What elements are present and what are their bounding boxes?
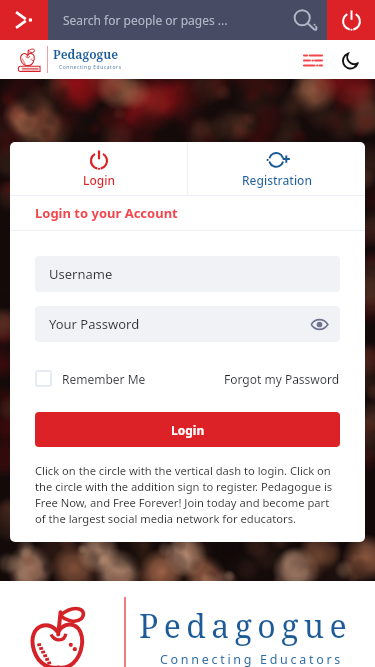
- button[interactable]: Search: [281, 0, 327, 40]
- button[interactable]: Login: [10, 142, 187, 195]
- staticText: Your Password: [49, 315, 140, 333]
- staticText: Username: [49, 265, 113, 283]
- button[interactable]: Menu: [0, 0, 48, 40]
- staticText: Connecting Educators: [160, 651, 343, 667]
- staticText: Click on the circle with the vertical da…: [35, 463, 340, 526]
- button[interactable]: Show password: [308, 313, 330, 335]
- button[interactable]: Search for people or pages ...: [48, 0, 281, 40]
- staticText: Pedagogue: [139, 604, 353, 648]
- button[interactable]: Registration: [188, 142, 365, 195]
- staticText: Login: [83, 172, 115, 188]
- button[interactable]: Username: [35, 256, 340, 292]
- button[interactable]: Forgot my Password: [224, 371, 340, 387]
- button[interactable]: Menu: [297, 45, 327, 75]
- staticText: Login to your Account: [35, 204, 178, 222]
- staticText: Login: [171, 422, 205, 438]
- button[interactable]: Your Password: [35, 306, 340, 342]
- button[interactable]: Login: [35, 412, 340, 447]
- button[interactable]: Dark mode: [335, 45, 365, 75]
- button[interactable]: Remember Me: [35, 370, 146, 387]
- staticText: Connecting Educators: [59, 64, 122, 71]
- staticText: Pedagogue: [53, 46, 119, 62]
- button[interactable]: Login: [327, 0, 375, 40]
- staticText: Registration: [242, 172, 312, 188]
- staticText: Remember Me: [62, 371, 146, 387]
- staticText: Search for people or pages ...: [63, 12, 228, 28]
